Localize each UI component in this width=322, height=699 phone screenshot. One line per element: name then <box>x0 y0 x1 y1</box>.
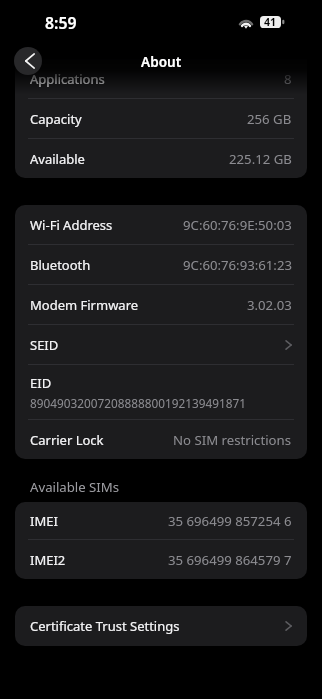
button[interactable]: Bluetooth <box>15 245 307 284</box>
staticText: 225.12 GB <box>229 150 292 168</box>
staticText: Carrier Lock <box>30 431 104 449</box>
staticText: 3.02.03 <box>247 296 292 314</box>
staticText: IMEI2 <box>30 551 66 569</box>
staticText: Available SIMs <box>30 478 120 496</box>
staticText: SEID <box>30 336 59 354</box>
staticText: 256 GB <box>247 110 292 128</box>
button[interactable]: EID <box>15 365 307 419</box>
other: Wi-Fi <box>239 16 253 28</box>
button[interactable]: IMEI2 <box>15 540 307 579</box>
staticText: Applications <box>30 70 105 88</box>
staticText: 35 696499 857254 6 <box>168 512 292 530</box>
button[interactable]: SEID <box>15 325 307 364</box>
button[interactable]: IMEI <box>15 502 307 539</box>
button[interactable]: Modem Firmware <box>15 285 307 324</box>
staticText: 89049032007208888800192139491871 <box>30 395 246 411</box>
staticText: Modem Firmware <box>30 296 139 314</box>
staticText: 35 696499 864579 7 <box>168 551 292 569</box>
staticText: 8:59 <box>45 12 77 34</box>
staticText: Bluetooth <box>30 256 91 274</box>
button[interactable]: Certificate Trust Settings <box>15 606 307 646</box>
staticText: 9C:60:76:9E:50:03 <box>183 216 292 234</box>
staticText: 8 <box>284 70 292 88</box>
staticText: No SIM restrictions <box>173 431 292 449</box>
staticText: Wi-Fi Address <box>30 216 113 234</box>
staticText: EID <box>30 374 52 392</box>
staticText: Capacity <box>30 110 82 128</box>
button[interactable]: Wi-Fi Address <box>15 205 307 244</box>
staticText: 41 <box>264 15 277 27</box>
staticText: IMEI <box>30 512 58 530</box>
button[interactable]: Carrier Lock <box>15 420 307 459</box>
staticText: Certificate Trust Settings <box>30 617 180 635</box>
button[interactable]: Back <box>14 47 42 75</box>
button[interactable]: Applications <box>15 59 307 98</box>
staticText: About <box>141 52 182 71</box>
staticText: Available <box>30 150 85 168</box>
button[interactable]: Capacity <box>15 99 307 138</box>
staticText: 9C:60:76:93:61:23 <box>183 256 292 274</box>
button[interactable]: Available <box>15 139 307 178</box>
